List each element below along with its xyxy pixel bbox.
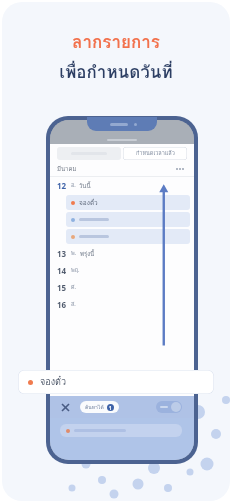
button[interactable]: Toggle [156,401,182,413]
staticText: อ. [71,181,76,190]
staticText: ลากรายการ [72,28,160,55]
staticText: มีนาคม [57,164,77,174]
staticText: พฤ. [71,266,80,275]
staticText: จองตั๋ว [79,198,98,208]
button[interactable]: กำหนดเวลาแล้ว [123,147,187,160]
staticText: พ. [71,249,77,258]
staticText: 12 [57,180,67,191]
button[interactable]: 12 [57,177,187,194]
staticText: ศ. [71,283,76,292]
button[interactable]: จองตั๋ว [18,370,214,394]
staticText: 13 [57,248,67,259]
button[interactable]: More options [173,162,187,176]
staticText: 15 [57,282,67,293]
staticText: เพื่อกำหนดวันที่ [59,58,173,85]
button[interactable]: ค้นหาได้ [85,401,114,413]
button[interactable] [66,212,190,227]
staticText: วันนี้ [79,181,91,191]
button[interactable] [66,229,190,244]
button[interactable]: จองตั๋ว [66,195,190,210]
button[interactable] [57,147,121,160]
staticText: 14 [57,265,67,276]
staticText: จองตั๋ว [40,375,66,389]
staticText: กำหนดเวลาแล้ว [136,149,175,158]
staticText: ค้นหาได้ [85,403,104,411]
staticText: 1 [109,405,112,411]
button[interactable]: 16 [57,296,187,313]
button[interactable]: 15 [57,279,187,296]
button[interactable]: Close [58,400,72,414]
staticText: 16 [57,299,67,310]
button[interactable]: 13 [57,245,187,262]
staticText: พรุ่งนี้ [80,249,95,259]
button[interactable]: 14 [57,262,187,279]
staticText: ส. [71,300,76,309]
